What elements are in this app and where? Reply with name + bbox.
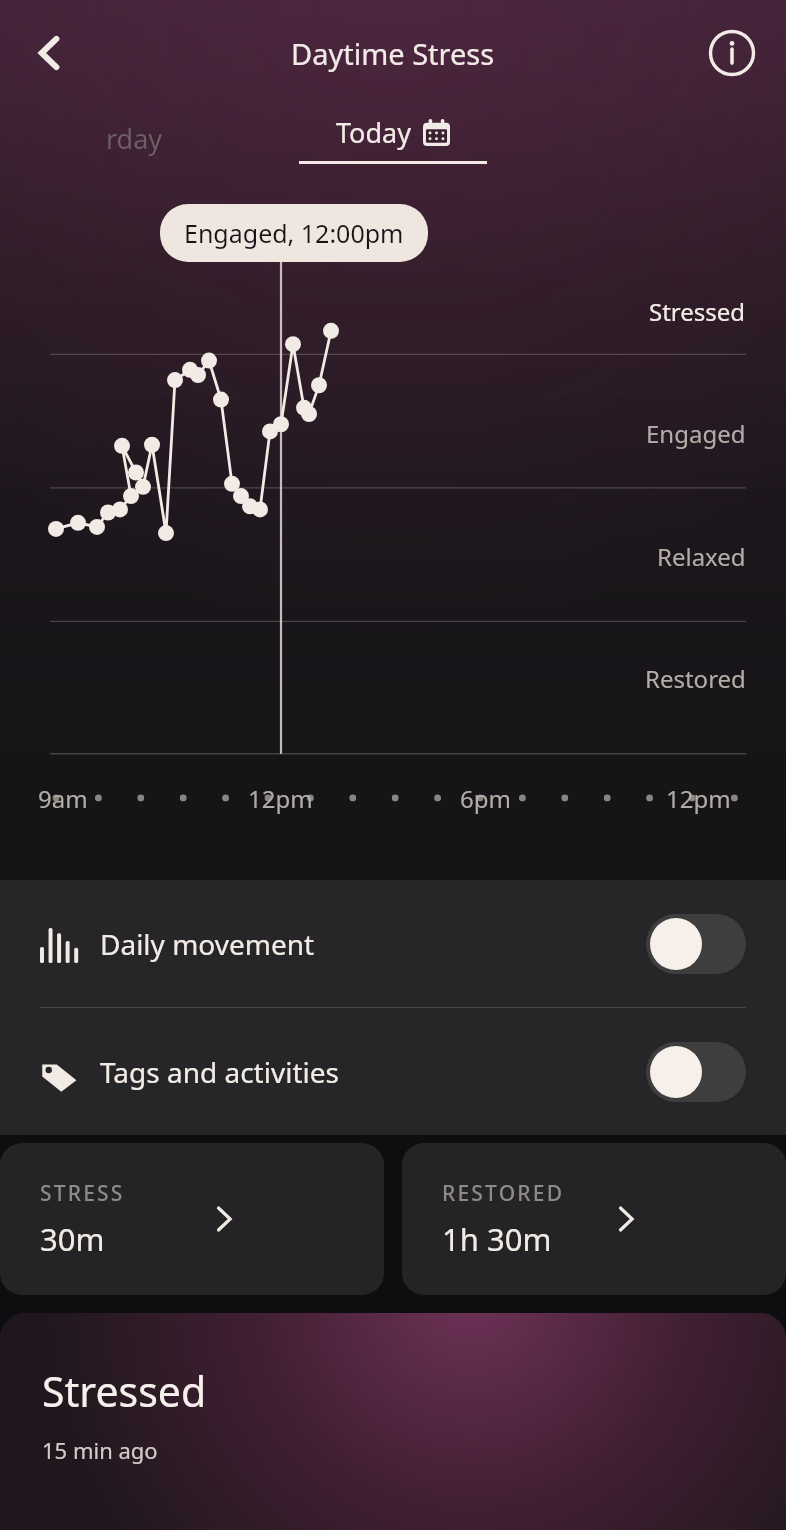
staticText: 1h 30m (442, 1218, 552, 1260)
staticText: Daily movement (100, 925, 646, 963)
button[interactable]: Back (16, 19, 84, 87)
button[interactable]: STRESS (0, 1143, 384, 1295)
button[interactable]: Tags and activities toggle (646, 1042, 746, 1102)
button[interactable]: RESTORED (402, 1143, 786, 1295)
button[interactable]: Engaged, 12:00pm (160, 204, 428, 262)
staticText: Restored (645, 662, 746, 695)
staticText: 12pm (666, 782, 731, 815)
staticText: Relaxed (657, 540, 746, 573)
staticText: 15 min ago (42, 1435, 158, 1465)
button[interactable]: Information (700, 21, 764, 85)
staticText: Stressed (649, 295, 746, 328)
staticText: Tags and activities (100, 1053, 646, 1091)
button[interactable]: Today (299, 106, 487, 164)
button[interactable]: Stressed (0, 1313, 786, 1530)
staticText: Daytime Stress (291, 34, 495, 73)
button[interactable]: Daily movement toggle (646, 914, 746, 974)
button[interactable]: Tags and activities (0, 1008, 786, 1135)
staticText: Stressed (42, 1363, 207, 1419)
staticText: STRESS (40, 1179, 125, 1208)
button[interactable]: Daily movement (0, 880, 786, 1007)
staticText: 9am (38, 782, 88, 815)
staticText: RESTORED (442, 1179, 565, 1208)
staticText: rday (106, 120, 163, 157)
staticText: 6pm (460, 782, 511, 815)
staticText: Engaged, 12:00pm (184, 216, 404, 250)
staticText: 12pm (248, 782, 313, 815)
button[interactable]: rday (100, 114, 169, 163)
staticText: Engaged (646, 417, 746, 450)
staticText: 30m (40, 1218, 105, 1260)
staticText: Today (336, 114, 411, 151)
